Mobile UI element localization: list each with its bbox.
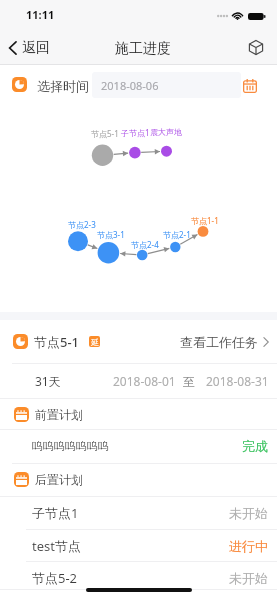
staticText: 节点5-2 [32, 569, 78, 587]
staticText: 施工进度 [115, 40, 171, 58]
button[interactable]: Pick date [243, 79, 257, 93]
staticText: 未开始 [229, 505, 268, 521]
staticText: test节点 [32, 537, 81, 555]
staticText: 子节点1 [121, 127, 150, 138]
staticText: 子节点1 [32, 504, 79, 522]
staticText: 节点1-1 [191, 215, 219, 226]
staticText: 节点5-1 [34, 333, 80, 351]
staticText: 后置计划 [35, 472, 83, 487]
staticText: 节点2-4 [131, 239, 159, 250]
button[interactable]: 节点5-1 [0, 320, 277, 363]
staticText: 31天 [35, 373, 61, 389]
staticText: 节点3-1 [97, 229, 125, 240]
staticText: 震大声地 [150, 127, 182, 137]
staticText: 选择时间 [37, 78, 89, 94]
staticText: 前置计划 [35, 407, 83, 422]
staticText: 进行中 [229, 538, 268, 554]
staticText: 2018-08-06 [101, 78, 159, 93]
staticText: 完成 [242, 438, 268, 454]
staticText: 2018-08-31 [206, 373, 269, 389]
staticText: 呜呜呜呜呜呜呜 [32, 439, 109, 453]
button[interactable]: test节点 [0, 530, 277, 562]
staticText: 未开始 [229, 570, 268, 586]
staticText: 2018-08-01 [113, 373, 176, 389]
button[interactable]: 返回 [6, 36, 53, 60]
button[interactable]: 2018-08-06 [92, 72, 241, 98]
button[interactable]: 节点5-2 [0, 562, 277, 594]
staticText: 11:11 [26, 7, 55, 22]
button[interactable]: 子节点1 [0, 497, 277, 529]
staticText: 节点2-1 [163, 229, 191, 240]
staticText: 节点5-1 [91, 128, 119, 139]
staticText: 返回 [22, 39, 50, 57]
staticText: 至 [183, 374, 195, 389]
button[interactable]: 呜呜呜呜呜呜呜 [0, 430, 277, 462]
staticText: 查看工作任务 [180, 334, 258, 350]
button[interactable]: 3D model view [247, 38, 265, 57]
staticText: 节点2-3 [68, 219, 96, 230]
staticText: 延 [91, 337, 99, 347]
